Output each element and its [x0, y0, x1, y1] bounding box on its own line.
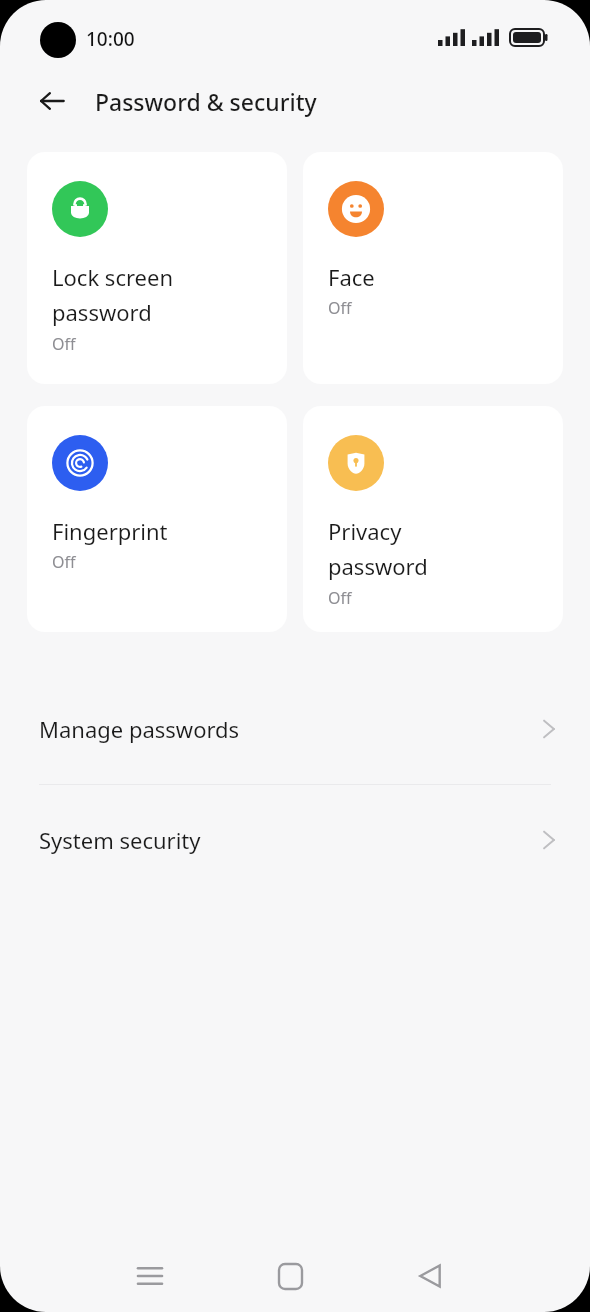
staticText: Privacy password [328, 516, 428, 582]
staticText: 10:00 [86, 26, 135, 52]
staticText: Face [328, 262, 375, 292]
button[interactable]: System security [0, 785, 590, 895]
button[interactable]: Back [28, 77, 76, 125]
button[interactable]: Face [303, 152, 563, 384]
staticText: Password & security [95, 86, 317, 117]
button[interactable]: Recent apps [110, 1240, 190, 1312]
button[interactable]: Home [250, 1240, 330, 1312]
staticText: Off [328, 587, 352, 609]
staticText: System security [39, 825, 201, 855]
button[interactable]: Back [390, 1240, 470, 1312]
staticText: Manage passwords [39, 714, 240, 744]
button[interactable]: Lock screen password [27, 152, 287, 384]
staticText: Off [52, 551, 76, 573]
button[interactable]: Manage passwords [0, 674, 590, 784]
staticText: Off [328, 297, 352, 319]
button[interactable]: Fingerprint [27, 406, 287, 632]
staticText: Lock screen password [52, 262, 174, 328]
button[interactable]: Privacy password [303, 406, 563, 632]
staticText: Fingerprint [52, 516, 168, 546]
staticText: Off [52, 333, 76, 355]
